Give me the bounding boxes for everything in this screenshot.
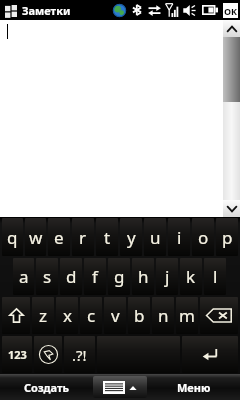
button[interactable]: Space — [97, 336, 180, 373]
button[interactable]: Input language — [34, 336, 62, 373]
staticText: r — [79, 226, 87, 249]
staticText: l — [213, 265, 218, 288]
staticText: q — [7, 226, 18, 249]
button[interactable]: i — [168, 218, 190, 256]
button[interactable]: d — [60, 258, 82, 295]
button[interactable]: j — [156, 258, 178, 295]
staticText: i — [177, 226, 182, 249]
staticText: x — [63, 304, 72, 327]
button[interactable]: g — [108, 258, 130, 295]
button[interactable]: Shift — [2, 297, 30, 334]
button[interactable]: a — [13, 258, 34, 295]
button[interactable]: h — [132, 258, 154, 295]
staticText: Создать — [24, 380, 70, 395]
button[interactable]: Backspace — [200, 297, 238, 334]
button[interactable]: Scroll up — [223, 20, 240, 37]
staticText: d — [66, 265, 77, 288]
staticText: z — [39, 304, 47, 327]
button[interactable]: l — [204, 258, 226, 295]
staticText: 123 — [8, 347, 27, 362]
staticText: j — [165, 265, 170, 288]
staticText: p — [222, 226, 233, 249]
button[interactable]: b — [128, 297, 150, 334]
button[interactable]: z — [32, 297, 54, 334]
button[interactable]: Создать — [0, 374, 93, 400]
button[interactable]: t — [96, 218, 118, 256]
staticText: s — [43, 265, 52, 288]
button[interactable]: k — [180, 258, 202, 295]
button[interactable]: Меню — [147, 374, 240, 400]
button[interactable]: Start — [3, 3, 18, 18]
button[interactable]: w — [25, 218, 46, 256]
staticText: c — [87, 304, 96, 327]
button[interactable]: v — [104, 297, 126, 334]
staticText: u — [150, 226, 161, 249]
staticText: n — [158, 304, 169, 327]
button[interactable]: OK — [223, 3, 238, 18]
staticText: a — [19, 265, 29, 288]
button[interactable]: Scroll down — [223, 200, 240, 217]
staticText: k — [186, 265, 196, 288]
staticText: y — [127, 226, 136, 249]
button[interactable]: Scroll position — [223, 37, 240, 102]
button[interactable]: n — [152, 297, 174, 334]
button[interactable]: y — [120, 218, 142, 256]
button[interactable]: m — [176, 297, 198, 334]
button[interactable]: e — [48, 218, 70, 256]
staticText: f — [92, 265, 98, 288]
button[interactable]: x — [56, 297, 78, 334]
button[interactable]: r — [72, 218, 94, 256]
staticText: t — [104, 226, 111, 249]
button[interactable]: 123 — [2, 336, 32, 373]
staticText: Заметки — [22, 3, 71, 18]
staticText: OK — [224, 5, 238, 17]
staticText: b — [134, 304, 145, 327]
button[interactable]: Enter — [182, 336, 238, 373]
staticText: h — [138, 265, 149, 288]
staticText: o — [198, 226, 209, 249]
button[interactable]: u — [144, 218, 166, 256]
button[interactable]: c — [80, 297, 102, 334]
staticText: g — [114, 265, 125, 288]
staticText: m — [179, 304, 195, 327]
button[interactable]: s — [36, 258, 58, 295]
staticText: .?! — [72, 345, 87, 365]
button[interactable]: q — [2, 218, 23, 256]
button[interactable]: Show keyboard — [93, 376, 147, 398]
button[interactable]: .?! — [64, 336, 95, 373]
button[interactable]: p — [216, 218, 238, 256]
staticText: Меню — [177, 380, 211, 395]
button[interactable]: f — [84, 258, 106, 295]
staticText: w — [29, 226, 43, 249]
staticText: e — [54, 226, 64, 249]
staticText: v — [111, 304, 120, 327]
button[interactable]: o — [192, 218, 214, 256]
